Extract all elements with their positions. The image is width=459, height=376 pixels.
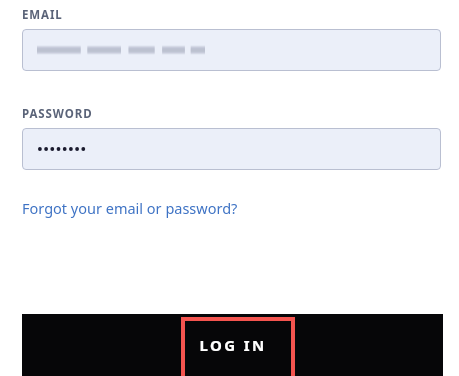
button[interactable] <box>22 29 441 71</box>
button[interactable] <box>22 128 441 170</box>
staticText: PASSWORD <box>22 106 93 122</box>
staticText: EMAIL <box>22 7 63 23</box>
button[interactable]: Log in <box>22 314 443 376</box>
staticText: Forgot your email or password? <box>22 198 238 218</box>
staticText: LOG IN <box>199 335 267 355</box>
button[interactable]: Forgot your email or password? <box>22 198 238 218</box>
